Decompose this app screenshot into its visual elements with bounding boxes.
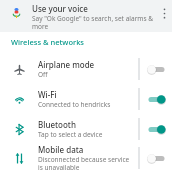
- button[interactable]: More options: [156, 0, 172, 32]
- staticText: Say "Ok Google" to search, set alarms & …: [32, 14, 154, 31]
- button[interactable]: Bluetooth toggle: [140, 114, 172, 144]
- staticText: Bluetooth: [38, 119, 76, 130]
- staticText: Off: [38, 70, 48, 79]
- staticText: Use your voice: [32, 3, 88, 14]
- staticText: Airplane mode: [38, 59, 95, 70]
- button[interactable]: Bluetooth: [0, 114, 172, 144]
- button[interactable]: Wi-Fi toggle: [140, 84, 172, 114]
- button[interactable]: Airplane mode toggle: [140, 54, 172, 84]
- staticText: Connected to hendricks: [38, 100, 111, 109]
- button[interactable]: Use your voice: [0, 0, 172, 32]
- button[interactable]: Mobile data: [0, 144, 172, 172]
- button[interactable]: Mobile data toggle: [140, 144, 172, 172]
- button[interactable]: Airplane mode: [0, 54, 172, 84]
- staticText: Wireless & networks: [11, 37, 84, 47]
- staticText: Tap to select a device: [38, 130, 103, 139]
- staticText: Wi-Fi: [38, 89, 57, 100]
- staticText: Disconnected because service is unavaila…: [38, 155, 135, 172]
- button[interactable]: Wi-Fi: [0, 84, 172, 114]
- staticText: Mobile data: [38, 144, 84, 155]
